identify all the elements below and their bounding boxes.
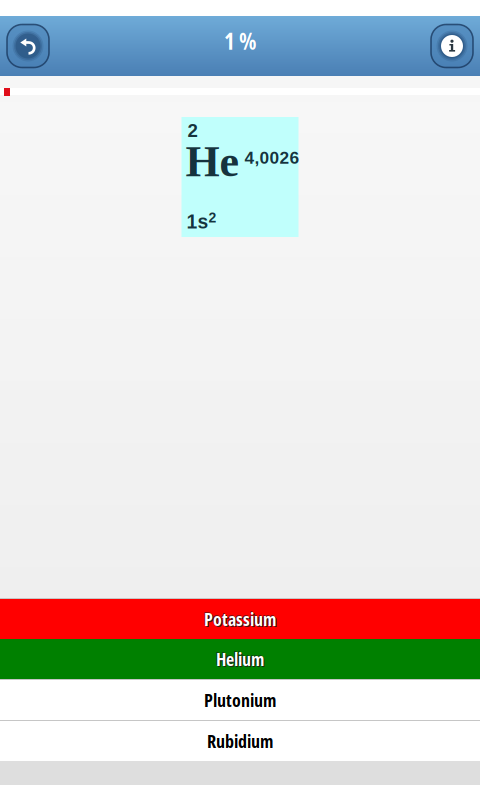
staticText: Rubidium bbox=[207, 729, 273, 753]
staticText: Helium bbox=[215, 646, 263, 670]
button[interactable]: Helium bbox=[0, 639, 480, 679]
button[interactable]: Potassium bbox=[0, 599, 480, 639]
button[interactable]: Info bbox=[425, 19, 479, 73]
staticText: 1 % bbox=[224, 26, 256, 56]
staticText: Plutonium bbox=[204, 688, 276, 712]
staticText: Helium bbox=[217, 648, 265, 672]
staticText: 4,0026 bbox=[244, 148, 299, 167]
staticText: Potassium bbox=[205, 608, 277, 632]
staticText: 1s2 bbox=[186, 210, 216, 232]
button[interactable]: Plutonium bbox=[0, 680, 480, 720]
staticText: 2 bbox=[187, 120, 197, 141]
staticText: Potassium bbox=[204, 607, 276, 631]
staticText: He bbox=[185, 137, 239, 186]
staticText: Helium bbox=[216, 647, 264, 671]
staticText: Potassium bbox=[203, 606, 275, 630]
button[interactable]: Rubidium bbox=[0, 721, 480, 761]
button[interactable]: Back bbox=[1, 19, 55, 73]
